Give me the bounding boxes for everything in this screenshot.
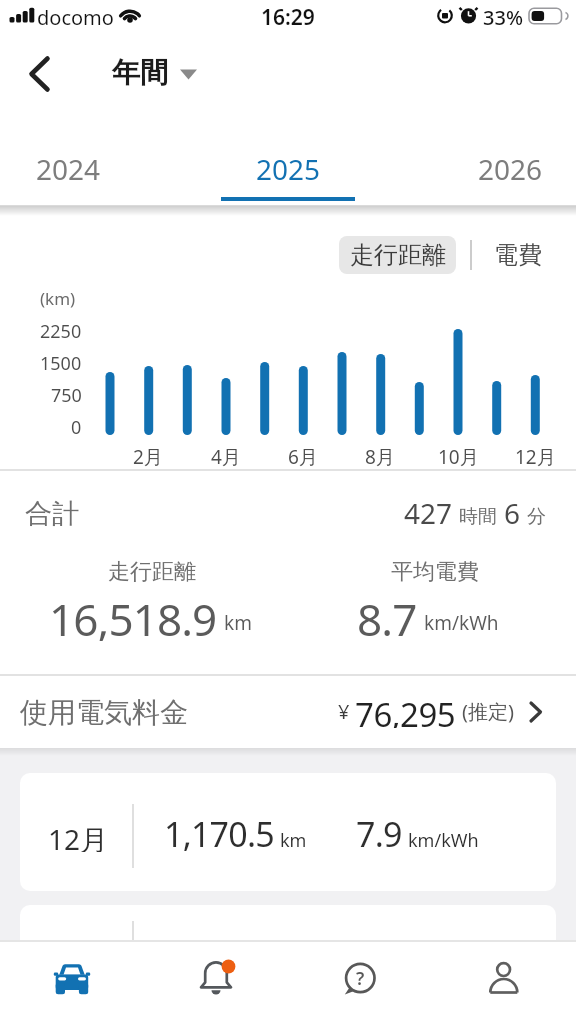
staticText: km/kWh bbox=[424, 610, 499, 636]
staticText: 8.7 bbox=[357, 589, 417, 641]
staticText: 時間 bbox=[459, 505, 497, 529]
staticText: 年間 bbox=[112, 55, 168, 90]
staticText: 合計 bbox=[25, 497, 79, 530]
staticText: docomo bbox=[37, 4, 114, 31]
staticText: 8月 bbox=[365, 444, 395, 470]
staticText: 10月 bbox=[438, 444, 479, 470]
button[interactable] bbox=[144, 941, 288, 1024]
staticText: 427 bbox=[404, 494, 453, 532]
staticText: 750 bbox=[51, 383, 82, 408]
staticText: 2026 bbox=[478, 150, 543, 184]
staticText: 76,295 bbox=[355, 692, 456, 728]
staticText: 分 bbox=[527, 505, 546, 529]
staticText: 走行距離 bbox=[350, 240, 446, 270]
staticText: km bbox=[280, 828, 307, 853]
button[interactable] bbox=[20, 905, 556, 985]
staticText: 1,170.5 bbox=[164, 811, 274, 857]
staticText: 平均電費 bbox=[391, 558, 479, 586]
staticText: 使用電気料金 bbox=[20, 695, 188, 727]
staticText: 6月 bbox=[288, 444, 318, 470]
button[interactable]: 年間 bbox=[100, 54, 180, 90]
button[interactable]: 2024 bbox=[28, 150, 108, 184]
staticText: 走行距離 bbox=[108, 558, 196, 586]
staticText: (推定) bbox=[462, 698, 514, 725]
button[interactable] bbox=[0, 941, 144, 1024]
staticText: 2024 bbox=[36, 150, 101, 184]
staticText: km/kWh bbox=[408, 828, 479, 853]
button[interactable] bbox=[0, 676, 576, 748]
staticText: 6 bbox=[504, 494, 521, 532]
staticText: ¥ bbox=[338, 698, 350, 725]
button[interactable] bbox=[432, 941, 576, 1024]
button[interactable] bbox=[288, 941, 432, 1024]
staticText: (km) bbox=[40, 287, 76, 310]
button[interactable] bbox=[20, 773, 556, 891]
button[interactable] bbox=[20, 50, 64, 96]
button[interactable]: 2025 bbox=[248, 150, 328, 184]
staticText: 2月 bbox=[133, 444, 163, 470]
staticText: 2250 bbox=[40, 319, 82, 344]
button[interactable]: 走行距離 bbox=[339, 236, 456, 274]
staticText: 16,518.9 bbox=[49, 589, 217, 641]
staticText: 4月 bbox=[211, 444, 241, 470]
staticText: 7.9 bbox=[356, 811, 402, 857]
staticText: 2025 bbox=[256, 150, 321, 184]
staticText: 33% bbox=[483, 4, 523, 31]
button[interactable]: 電費 bbox=[484, 236, 552, 274]
staticText: 12月 bbox=[48, 820, 109, 852]
staticText: ? bbox=[356, 966, 365, 990]
staticText: 12月 bbox=[515, 444, 556, 470]
staticText: 0 bbox=[71, 415, 82, 440]
staticText: 16:29 bbox=[261, 3, 315, 31]
button[interactable]: 2026 bbox=[470, 150, 550, 184]
staticText: 電費 bbox=[494, 240, 542, 270]
staticText: km bbox=[224, 610, 252, 636]
staticText: 1500 bbox=[40, 351, 82, 376]
